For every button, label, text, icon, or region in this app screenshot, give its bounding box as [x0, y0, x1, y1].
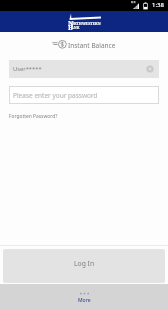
staticText: Please enter your password [13, 91, 98, 100]
staticText: Forgotten Password? [9, 113, 58, 120]
button[interactable]: Please enter your password [9, 86, 159, 104]
button[interactable]: Log In [3, 249, 165, 283]
staticText: User***** [13, 65, 42, 73]
button[interactable]: Clear username [146, 65, 154, 73]
staticText: B [68, 23, 73, 33]
button[interactable]: Forgotten Password? [9, 113, 58, 120]
staticText: More [78, 297, 91, 304]
staticText: ANK [71, 25, 80, 30]
staticText: Instant Balance [68, 41, 116, 50]
staticText: N [68, 19, 74, 29]
staticText: ORTHWESTERN [71, 21, 101, 26]
button[interactable]: Instant Balance [0, 36, 168, 52]
staticText: 1:38 [152, 1, 164, 9]
button[interactable]: User***** [9, 60, 159, 78]
button[interactable]: More [0, 284, 168, 310]
staticText: Log In [74, 259, 95, 268]
